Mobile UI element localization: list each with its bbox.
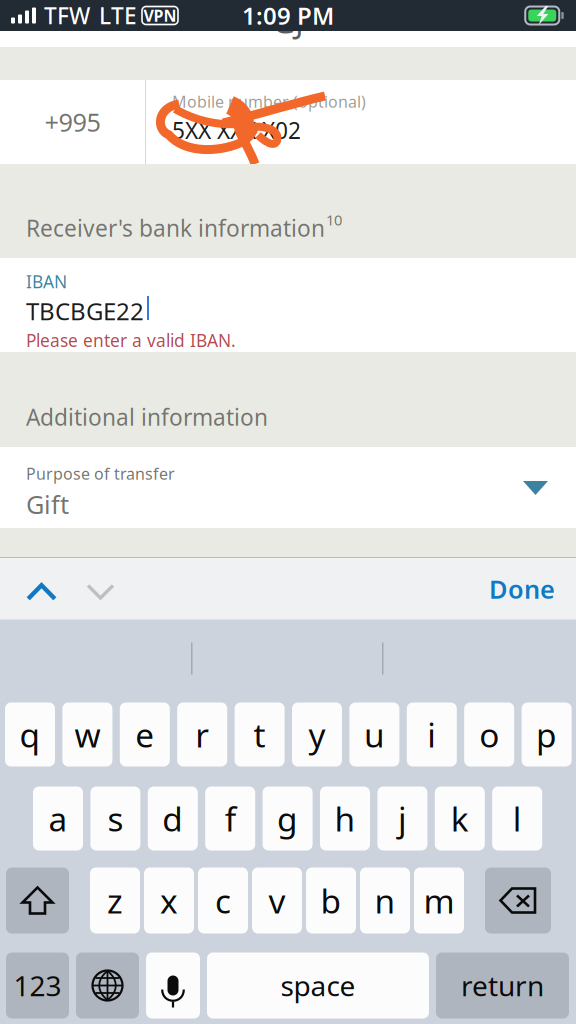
button[interactable]: d — [148, 786, 198, 850]
staticText: z — [107, 878, 123, 923]
button[interactable]: 123 — [6, 952, 69, 1018]
staticText: v — [268, 878, 285, 923]
staticText: e — [135, 712, 154, 757]
button[interactable]: return — [436, 952, 569, 1018]
staticText: q — [19, 712, 40, 757]
staticText: s — [107, 796, 123, 841]
button[interactable]: Next field — [71, 558, 130, 620]
button[interactable]: v — [252, 867, 302, 933]
staticText: m — [423, 878, 454, 923]
staticText: 5XX XXX X02 — [172, 115, 301, 145]
button[interactable]: Purpose of transfer — [0, 447, 576, 528]
button[interactable]: s — [90, 786, 140, 850]
button[interactable]: Dictation — [146, 952, 200, 1018]
button[interactable]: Previous field — [12, 558, 71, 620]
staticText: c — [215, 878, 231, 923]
button[interactable]: a — [33, 786, 83, 850]
staticText: Done — [489, 572, 555, 606]
button[interactable]: e — [120, 702, 170, 766]
staticText: Receiver's bank information — [26, 213, 325, 243]
staticText: l — [513, 796, 522, 841]
staticText: space — [280, 967, 355, 1004]
button[interactable]: k — [435, 786, 485, 850]
button[interactable]: t — [235, 702, 285, 766]
button[interactable]: y — [292, 702, 342, 766]
staticText: TBCBGE22 — [26, 295, 144, 327]
staticText: t — [254, 712, 266, 757]
button[interactable]: space — [207, 952, 429, 1018]
staticText: IBAN — [26, 270, 67, 293]
staticText: j — [398, 796, 407, 841]
staticText: d — [162, 796, 183, 841]
staticText: 1:09 PM — [242, 0, 334, 31]
staticText: b — [320, 878, 341, 923]
staticText: Additional information — [26, 402, 268, 432]
staticText: k — [451, 796, 469, 841]
button[interactable]: x — [144, 867, 194, 933]
staticText: Please enter a valid IBAN. — [26, 329, 236, 352]
staticText: f — [225, 796, 236, 841]
button[interactable]: r — [177, 702, 227, 766]
button[interactable]: b — [306, 867, 356, 933]
button[interactable]: p — [522, 702, 572, 766]
staticText: TFW — [44, 0, 90, 30]
staticText: w — [74, 712, 100, 757]
button[interactable]: j — [377, 786, 427, 850]
staticText: p — [536, 712, 557, 757]
staticText: u — [364, 712, 385, 757]
staticText: LTE — [99, 0, 137, 30]
button[interactable]: Next keyboard — [76, 952, 139, 1018]
button[interactable]: n — [360, 867, 410, 933]
staticText: +995 — [44, 105, 100, 139]
button[interactable]: o — [464, 702, 514, 766]
staticText: y — [308, 712, 325, 757]
staticText: n — [374, 878, 395, 923]
staticText: Gift — [26, 487, 69, 521]
button[interactable]: u — [349, 702, 399, 766]
staticText: Mobile number (optional) — [172, 91, 366, 112]
button[interactable]: i — [407, 702, 457, 766]
button[interactable]: h — [320, 786, 370, 850]
staticText: return — [461, 967, 544, 1004]
button[interactable]: w — [62, 702, 112, 766]
staticText: o — [479, 712, 499, 757]
button[interactable]: q — [5, 702, 55, 766]
button[interactable]: z — [90, 867, 140, 933]
button[interactable]: m — [414, 867, 464, 933]
button[interactable]: f — [205, 786, 255, 850]
button[interactable]: l — [492, 786, 542, 850]
staticText: 123 — [13, 967, 61, 1004]
button[interactable]: g — [263, 786, 313, 850]
staticText: g — [277, 796, 298, 841]
staticText: VPN — [143, 5, 176, 26]
staticText: h — [334, 796, 355, 841]
button[interactable]: Done — [489, 558, 576, 620]
button[interactable]: Delete — [485, 867, 551, 933]
staticText: r — [195, 712, 209, 757]
button[interactable]: c — [198, 867, 248, 933]
button[interactable]: Shift — [6, 867, 69, 933]
staticText: Purpose of transfer — [26, 463, 175, 484]
staticText: a — [48, 796, 67, 841]
staticText: i — [427, 712, 436, 757]
staticText: x — [160, 878, 178, 923]
staticText: 10 — [326, 210, 342, 229]
staticText: GJ — [272, 0, 304, 42]
